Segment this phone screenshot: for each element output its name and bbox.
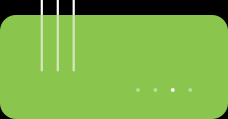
button[interactable]: Card — [0, 15, 228, 119]
